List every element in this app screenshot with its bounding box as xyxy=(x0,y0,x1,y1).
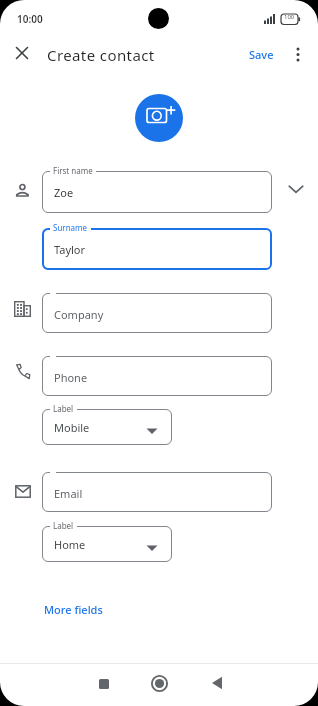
staticText: Zoe xyxy=(54,185,74,200)
button[interactable] xyxy=(210,676,224,690)
button[interactable] xyxy=(151,675,168,692)
staticText: More fields xyxy=(44,602,103,617)
button[interactable] xyxy=(42,356,272,396)
button[interactable] xyxy=(10,42,34,66)
button[interactable] xyxy=(96,676,112,692)
button[interactable]: Mobile xyxy=(42,409,172,445)
button[interactable]: Save xyxy=(249,47,274,62)
staticText: Email xyxy=(54,486,83,501)
staticText: 100 xyxy=(284,13,295,21)
staticText: Taylor xyxy=(54,242,86,257)
staticText: Home xyxy=(54,537,86,552)
button[interactable]: Home xyxy=(42,526,172,562)
staticText: 10:00 xyxy=(17,12,43,26)
staticText: Label xyxy=(53,520,74,531)
button[interactable] xyxy=(42,293,272,333)
button[interactable] xyxy=(135,94,183,142)
staticText: Mobile xyxy=(54,420,90,435)
staticText: Surname xyxy=(53,222,88,233)
button[interactable] xyxy=(42,472,272,512)
staticText: Company xyxy=(54,307,104,322)
button[interactable] xyxy=(290,43,308,65)
button[interactable]: Taylor xyxy=(42,228,272,270)
staticText: Save xyxy=(249,47,274,62)
staticText: Create contact xyxy=(47,45,155,65)
staticText: Phone xyxy=(54,370,88,385)
staticText: Label xyxy=(53,403,74,414)
staticText: First name xyxy=(53,165,93,176)
button[interactable]: More fields xyxy=(44,602,103,617)
button[interactable]: Zoe xyxy=(42,171,272,213)
button[interactable] xyxy=(286,179,306,199)
